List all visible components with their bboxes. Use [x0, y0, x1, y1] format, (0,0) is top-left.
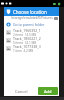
- staticText: Choose location: [13, 9, 47, 15]
- staticText: Add: [44, 89, 52, 94]
- staticText: 2 items, 14.5 MB: [13, 33, 37, 36]
- staticText: Track_1960392_1: [13, 28, 41, 33]
- staticText: 5 items, 32.1 MB: [13, 41, 37, 44]
- staticText: Track_1850221_2: [13, 36, 41, 41]
- staticText: Track_1077338_3: [13, 44, 41, 49]
- button[interactable]: Cancel: [4, 87, 38, 96]
- button[interactable]: Track_1960392_1: [4, 28, 59, 36]
- button[interactable]: Track_1077338_3: [4, 44, 59, 52]
- button[interactable]: Go to parent folder: [4, 20, 59, 28]
- staticText: /storage/emulated/0/Pictures: [11, 16, 53, 20]
- button[interactable]: Add: [38, 87, 58, 95]
- staticText: Go to parent folder: [13, 22, 45, 27]
- button[interactable]: Track_1850221_2: [4, 36, 59, 44]
- staticText: Cancel: [15, 89, 28, 94]
- staticText: 1 item, 4.2 MB: [13, 49, 34, 52]
